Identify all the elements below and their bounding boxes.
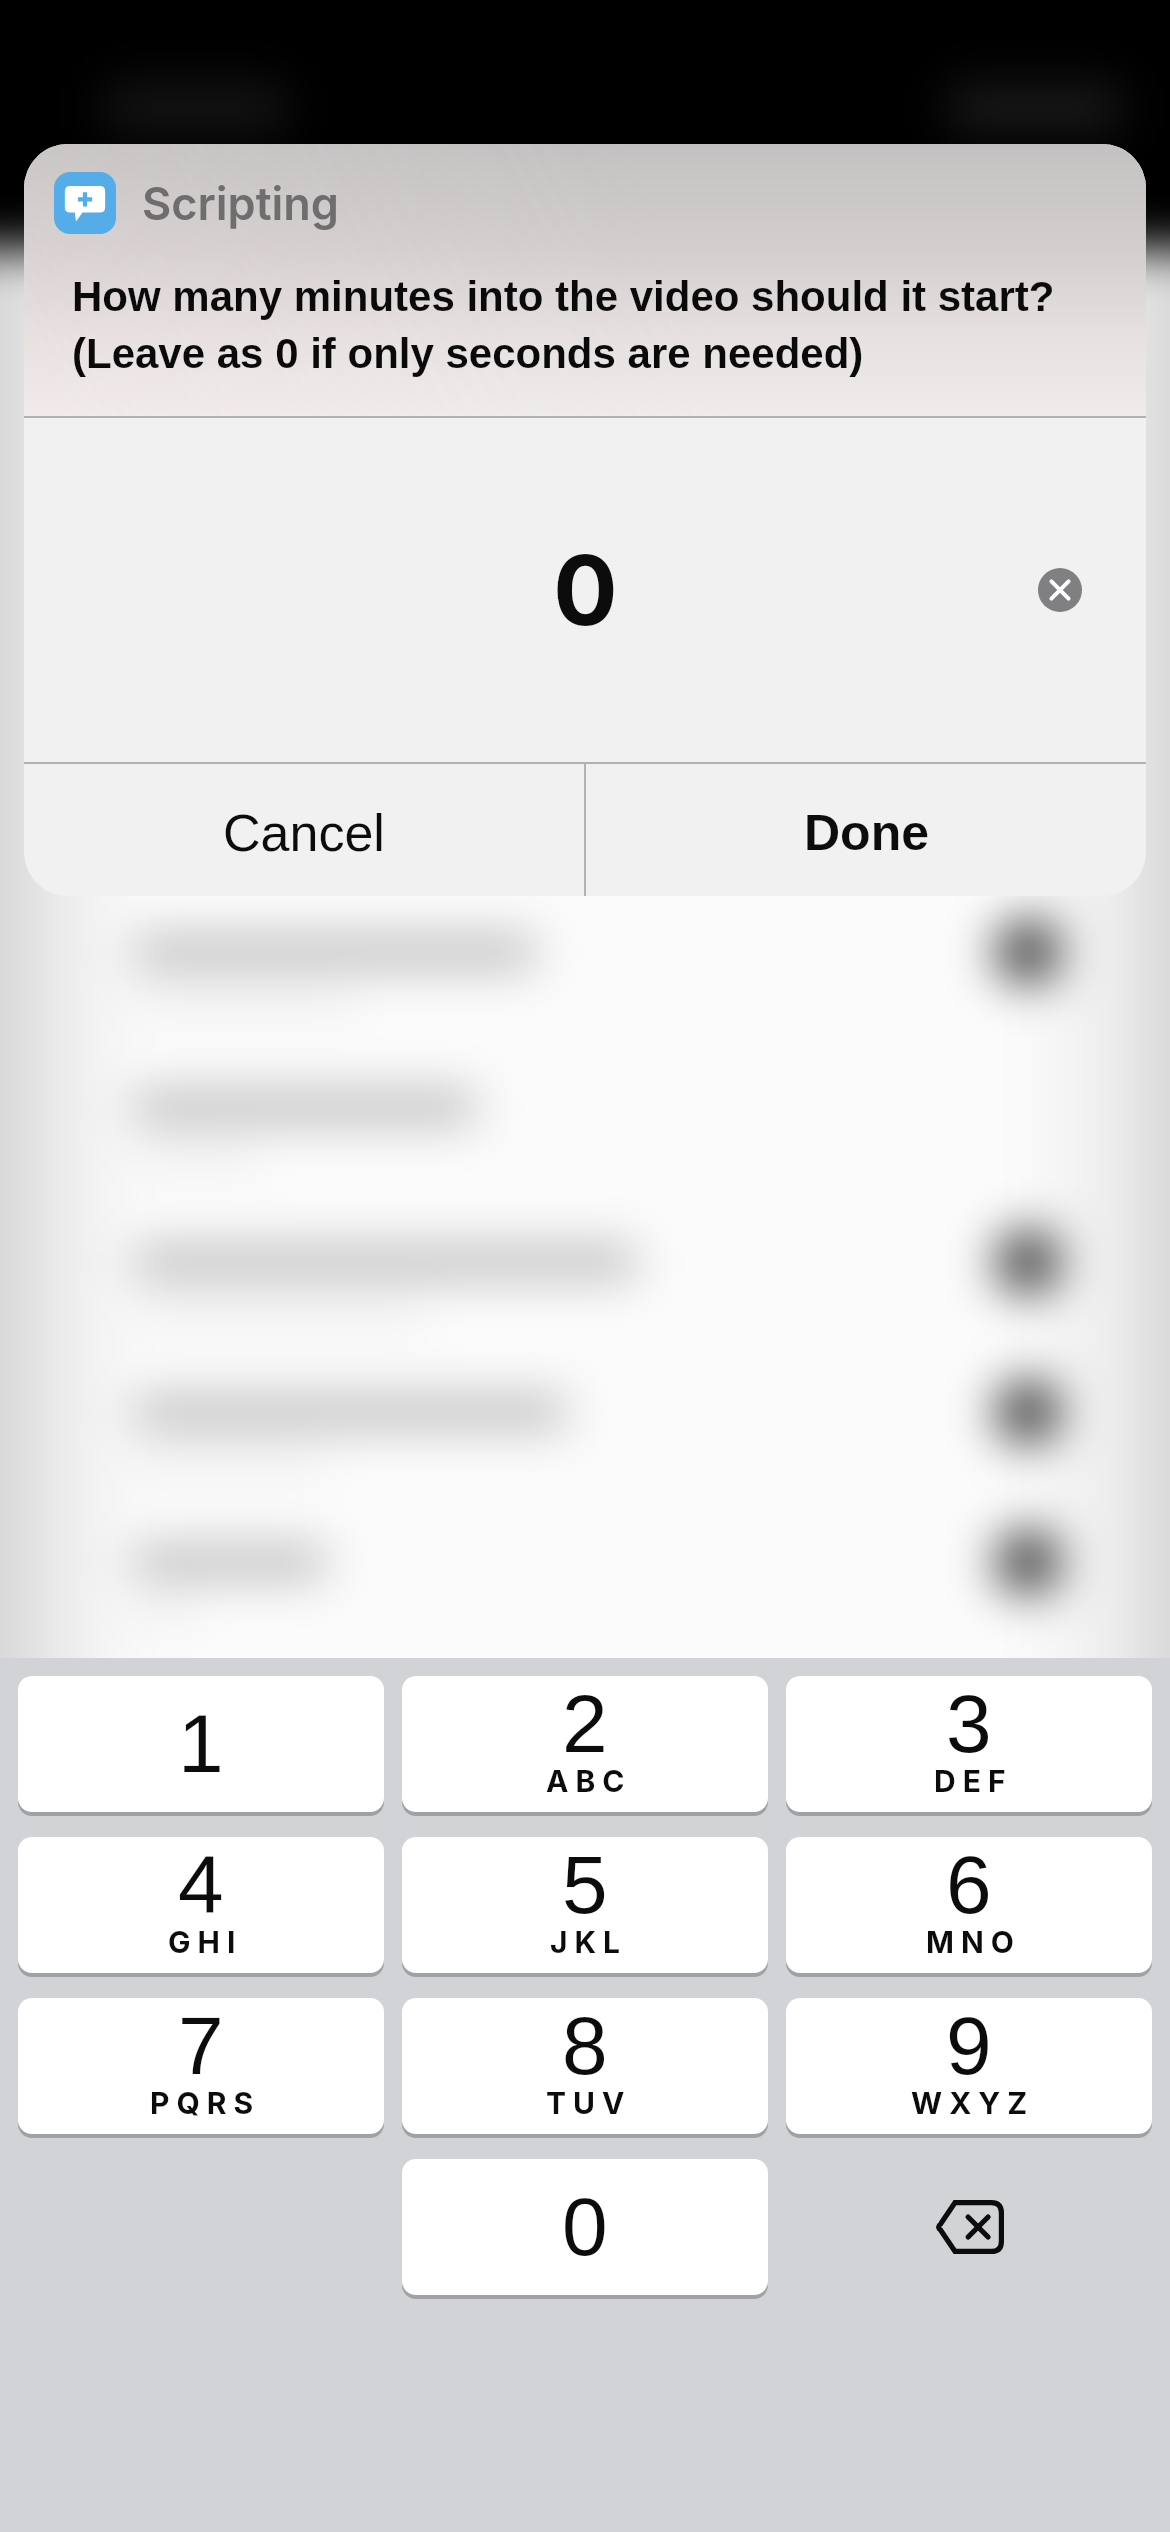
- staticText: Scripting: [142, 176, 339, 230]
- staticText: 3: [946, 1678, 992, 1770]
- staticText: 6: [946, 1839, 992, 1931]
- button[interactable]: 0: [402, 2159, 768, 2295]
- button[interactable]: Delete: [786, 2159, 1152, 2295]
- staticText: 0: [553, 532, 618, 648]
- staticText: 8: [562, 2000, 608, 2092]
- staticText: GHI: [168, 1924, 243, 1960]
- staticText: JKL: [550, 1924, 628, 1960]
- button[interactable]: 7: [18, 1998, 384, 2134]
- button[interactable]: 2: [402, 1676, 768, 1812]
- button[interactable]: Clear text: [1038, 568, 1082, 612]
- staticText: 2: [562, 1678, 608, 1770]
- staticText: Done: [804, 805, 929, 861]
- button[interactable]: 3: [786, 1676, 1152, 1812]
- button[interactable]: 6: [786, 1837, 1152, 1973]
- staticText: MNO: [926, 1924, 1021, 1960]
- button[interactable]: 1: [18, 1676, 384, 1812]
- staticText: 7: [178, 2000, 224, 2092]
- staticText: How many minutes into the video should i…: [72, 273, 1055, 377]
- button[interactable]: Cancel: [24, 764, 584, 896]
- staticText: WXYZ: [911, 2085, 1035, 2121]
- button[interactable]: 5: [402, 1837, 768, 1973]
- button[interactable]: Done: [586, 764, 1146, 896]
- button[interactable]: 9: [786, 1998, 1152, 2134]
- button[interactable]: 8: [402, 1998, 768, 2134]
- staticText: ABC: [546, 1763, 632, 1799]
- staticText: 5: [562, 1839, 608, 1931]
- staticText: PQRS: [150, 2085, 261, 2121]
- staticText: Cancel: [223, 804, 385, 862]
- staticText: TUV: [546, 2085, 632, 2121]
- staticText: 0: [562, 2181, 608, 2273]
- button[interactable]: 4: [18, 1837, 384, 1973]
- staticText: DEF: [934, 1763, 1013, 1799]
- staticText: 1: [178, 1698, 224, 1790]
- staticText: 4: [178, 1839, 224, 1931]
- staticText: 9: [946, 2000, 992, 2092]
